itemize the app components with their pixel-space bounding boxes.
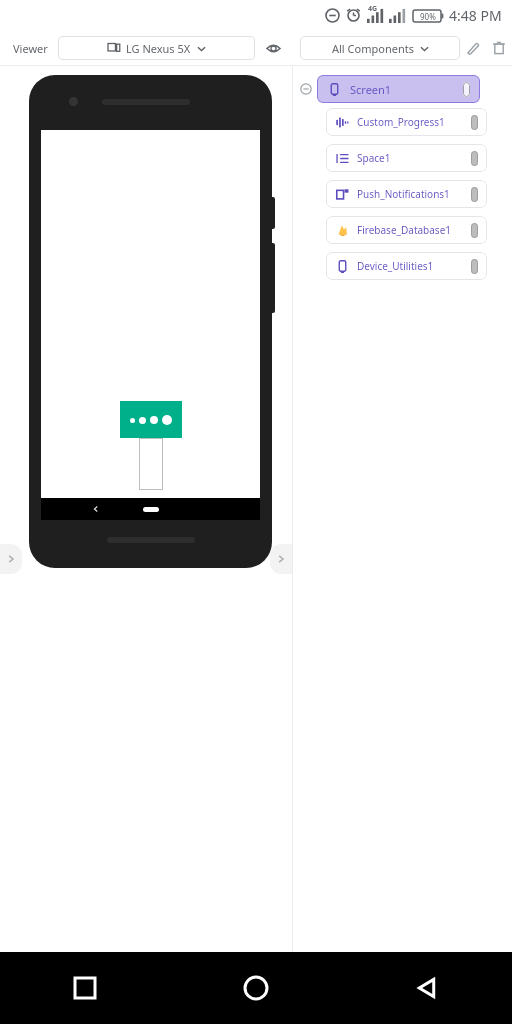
staticText: LG Nexus 5X xyxy=(126,41,191,56)
button[interactable]: Delete xyxy=(486,35,512,61)
button[interactable]: Next xyxy=(270,544,292,574)
button[interactable]: Screen1 xyxy=(317,75,480,103)
staticText: Screen1 xyxy=(350,82,392,97)
button[interactable]: LG Nexus 5X xyxy=(58,36,255,60)
button[interactable]: Rename xyxy=(460,35,486,61)
staticText: All Components xyxy=(332,41,414,56)
button[interactable]: Previous xyxy=(0,544,22,574)
button[interactable]: Device_Utilities1 xyxy=(326,252,487,280)
button[interactable]: Home xyxy=(170,952,341,1024)
button[interactable]: Back xyxy=(341,952,512,1024)
staticText: 4:48 PM xyxy=(449,6,502,25)
button[interactable]: All Components xyxy=(300,36,460,60)
button[interactable]: Space1 xyxy=(326,144,487,172)
staticText: Space1 xyxy=(357,151,391,165)
button[interactable]: Custom progress xyxy=(120,401,182,438)
button[interactable]: Collapse xyxy=(297,80,315,98)
staticText: Custom_Progress1 xyxy=(357,115,445,129)
staticText: Firebase_Database1 xyxy=(357,223,452,237)
staticText: 4G xyxy=(368,4,378,14)
staticText: Push_Notifications1 xyxy=(357,187,450,201)
button[interactable]: Push_Notifications1 xyxy=(326,180,487,208)
button[interactable]: Custom_Progress1 xyxy=(326,108,487,136)
staticText: 90% xyxy=(420,11,436,22)
staticText: Viewer xyxy=(13,41,48,56)
staticText: Device_Utilities1 xyxy=(357,259,434,273)
button[interactable]: Toggle preview xyxy=(260,35,286,61)
button[interactable]: Firebase_Database1 xyxy=(326,216,487,244)
button[interactable]: Recent apps xyxy=(0,952,170,1024)
